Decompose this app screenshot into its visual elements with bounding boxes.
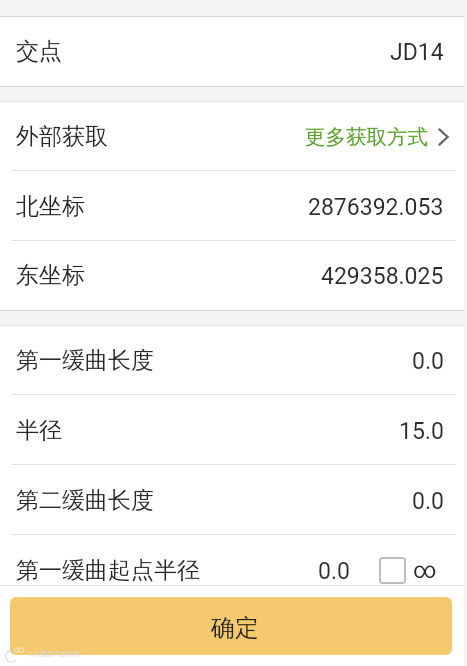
staticText: 15.0	[399, 418, 444, 445]
staticText: 半径	[16, 416, 62, 445]
button[interactable]: 外部获取	[0, 102, 467, 171]
staticText: 第一缓曲长度	[16, 346, 154, 375]
staticText: 交点	[16, 37, 62, 66]
button[interactable]: 北坐标	[0, 171, 467, 241]
button[interactable]: 东坐标	[0, 241, 467, 310]
button[interactable]: 第二缓曲长度	[0, 465, 467, 535]
staticText: 人人都是产品经理	[27, 650, 79, 658]
staticText: 0.0	[318, 558, 350, 585]
staticText: 北坐标	[16, 192, 85, 221]
staticText: ∞	[413, 557, 437, 584]
staticText: 确定	[211, 613, 259, 643]
other: More acquisition methods	[438, 128, 449, 146]
staticText: 429358.025	[321, 263, 444, 290]
staticText: 0.0	[412, 348, 444, 375]
button[interactable]: Infinite radius	[379, 557, 406, 584]
button[interactable]: 确定	[10, 597, 452, 655]
staticText: JD14	[390, 39, 444, 66]
button[interactable]: 第一缓曲起点半径	[0, 535, 467, 585]
button[interactable]: 半径	[0, 395, 467, 465]
button[interactable]: 第一缓曲长度	[0, 326, 467, 395]
button[interactable]: 交点	[0, 17, 467, 86]
staticText: 2876392.053	[308, 194, 444, 221]
staticText: 外部获取	[16, 122, 108, 151]
staticText: 东坐标	[16, 261, 85, 290]
staticText: 第二缓曲长度	[16, 486, 154, 515]
staticText: 第一缓曲起点半径	[16, 556, 200, 585]
staticText: 0.0	[412, 488, 444, 515]
staticText: 更多获取方式	[305, 124, 428, 150]
